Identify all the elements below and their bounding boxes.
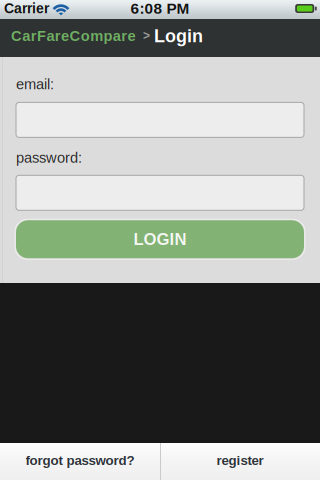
staticText: register: [216, 453, 263, 468]
staticText: Carrier: [4, 1, 49, 16]
staticText: >: [143, 29, 150, 42]
staticText: forgot password?: [25, 453, 134, 468]
button[interactable]: register: [160, 443, 320, 480]
button[interactable]: [16, 175, 304, 210]
button[interactable]: CarFareCompare: [11, 17, 137, 55]
staticText: Login: [154, 26, 203, 46]
staticText: LOGIN: [133, 230, 186, 249]
staticText: CarFareCompare: [11, 28, 135, 44]
button[interactable]: forgot password?: [0, 443, 160, 480]
staticText: 6:08 PM: [130, 0, 189, 17]
button[interactable]: LOGIN: [16, 220, 304, 258]
button[interactable]: [16, 102, 304, 137]
staticText: password:: [16, 149, 82, 166]
staticText: email:: [16, 76, 54, 92]
